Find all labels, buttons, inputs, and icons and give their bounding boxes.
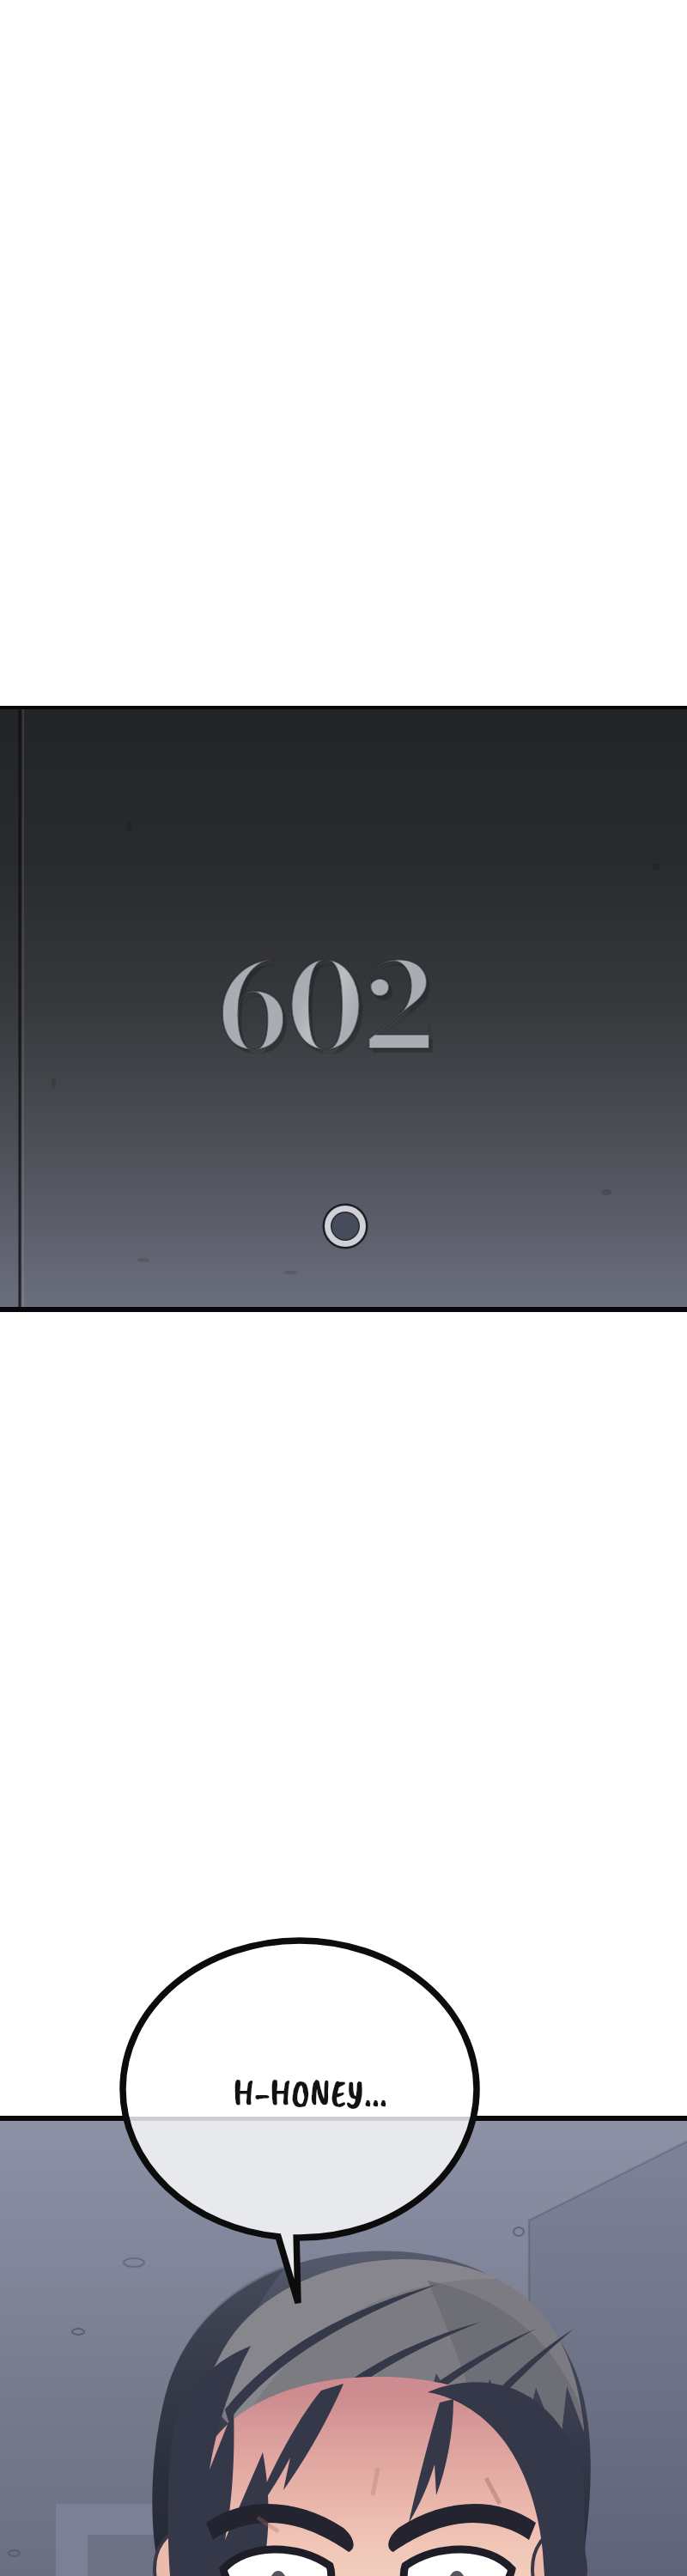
button[interactable]: Comic page, tap to show reader controls xyxy=(0,0,687,2576)
